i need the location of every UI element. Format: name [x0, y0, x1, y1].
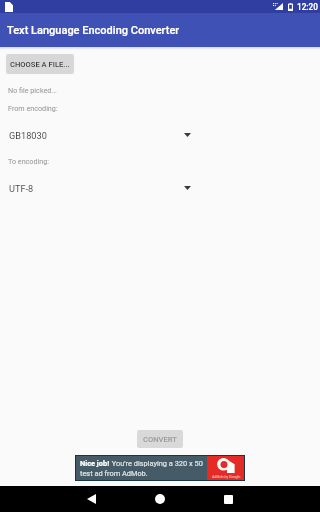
- other: Battery: [288, 3, 293, 11]
- other: Mobile signal: [273, 3, 283, 10]
- button[interactable]: GB18030: [0, 123, 194, 147]
- staticText: Nice job!: [80, 459, 110, 468]
- staticText: 12:20: [297, 2, 318, 12]
- staticText: AdMob by Google: [212, 475, 241, 479]
- staticText: UTF-8: [9, 183, 34, 194]
- button[interactable]: UTF-8: [0, 176, 194, 200]
- button[interactable]: Nice job!: [75, 455, 245, 481]
- staticText: No file picked...: [8, 86, 58, 94]
- staticText: CHOOSE A FILE...: [10, 60, 70, 69]
- staticText: To encoding:: [8, 157, 50, 165]
- other: Home: [155, 494, 165, 504]
- other: Note: [5, 2, 13, 12]
- staticText: You're displaying a 320 x 50: [110, 459, 203, 468]
- staticText: CONVERT: [143, 435, 177, 444]
- other: Back: [87, 494, 96, 504]
- staticText: From encoding:: [8, 104, 58, 112]
- button[interactable]: CHOOSE A FILE...: [6, 54, 74, 74]
- button[interactable]: CONVERT: [137, 430, 183, 448]
- staticText: test ad from AdMob.: [80, 469, 148, 478]
- staticText: GB18030: [9, 130, 47, 141]
- staticText: Text Language Encoding Converter: [7, 24, 180, 37]
- other: Recent apps: [224, 495, 233, 504]
